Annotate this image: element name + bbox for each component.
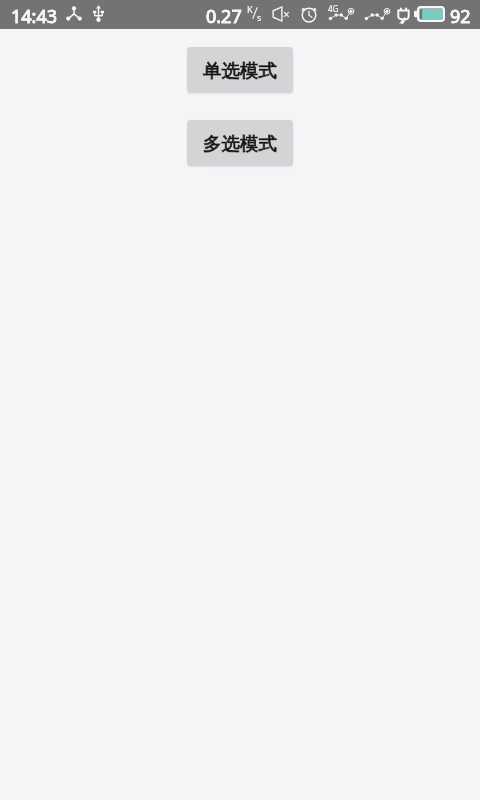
other: SIM 2 signal [364,6,389,22]
other: Battery 92 percent [414,6,445,22]
staticText: 多选模式 [203,132,277,155]
staticText: 14:43 [11,4,58,29]
staticText: 单选模式 [203,59,277,82]
staticText: 92 [450,4,471,29]
other: USB connected [93,5,104,22]
button[interactable]: 多选模式 [187,120,293,166]
other: Charging [397,5,410,23]
other: Bluetooth sharing [66,6,82,21]
staticText: K [247,3,253,15]
button[interactable]: 单选模式 [187,47,293,93]
staticText: 92 [450,4,471,29]
other: Alarm set [301,6,317,22]
staticText: 0.27 [206,4,242,29]
other: SIM 1 signal [328,6,353,22]
other: Ringer muted [272,6,291,22]
staticText: 4G [328,3,339,14]
staticText: s [257,11,262,23]
staticText: 14:43 [11,4,58,29]
other: Status bar [0,0,480,29]
staticText: 单选模式 [203,59,277,82]
staticText: 多选模式 [203,132,277,155]
staticText: 0.27 [206,4,242,29]
